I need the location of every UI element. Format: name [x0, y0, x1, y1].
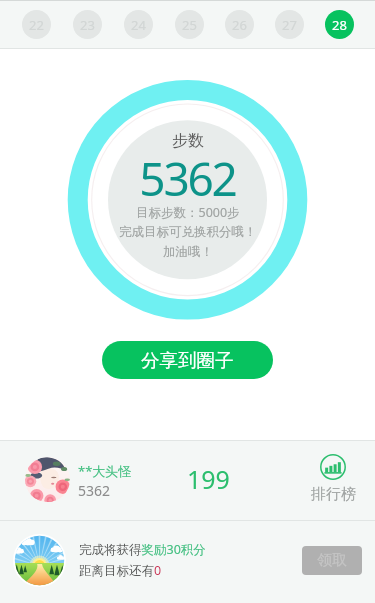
- button[interactable]: [0, 441, 375, 520]
- button[interactable]: 领取: [302, 546, 362, 575]
- staticText: 5362: [139, 147, 236, 210]
- button[interactable]: 排行榜: [303, 454, 363, 500]
- staticText: 27: [282, 16, 297, 34]
- staticText: 分享到圈子: [141, 349, 234, 372]
- staticText: 加油哦！: [163, 244, 213, 260]
- staticText: 23: [80, 16, 95, 34]
- staticText: 28: [332, 16, 347, 34]
- button[interactable]: 分享到圈子: [102, 341, 273, 379]
- button[interactable]: 25: [164, 0, 214, 49]
- staticText: 完成将获得奖励30积分: [79, 541, 206, 558]
- button[interactable]: 22: [11, 0, 62, 49]
- other: 排行榜: [320, 454, 346, 480]
- button[interactable]: 23: [62, 0, 113, 49]
- staticText: 距离目标还有0: [79, 562, 162, 579]
- staticText: 目标步数：5000步: [136, 204, 240, 221]
- button[interactable]: 28: [314, 0, 364, 49]
- staticText: 排行榜: [311, 485, 356, 504]
- button[interactable]: 用户头像: [25, 457, 70, 502]
- button[interactable]: 24: [113, 0, 164, 49]
- staticText: 22: [29, 16, 44, 34]
- button[interactable]: 26: [214, 0, 264, 49]
- staticText: 24: [131, 16, 146, 34]
- staticText: 199: [187, 462, 230, 496]
- staticText: 完成目标可兑换积分哦！: [119, 224, 257, 240]
- staticText: 步数: [172, 131, 204, 151]
- button[interactable]: 27: [264, 0, 314, 49]
- staticText: 25: [182, 16, 197, 34]
- staticText: 26: [232, 16, 247, 34]
- staticText: **大头怪: [78, 462, 132, 480]
- staticText: 领取: [317, 551, 347, 570]
- staticText: 5362: [78, 481, 111, 500]
